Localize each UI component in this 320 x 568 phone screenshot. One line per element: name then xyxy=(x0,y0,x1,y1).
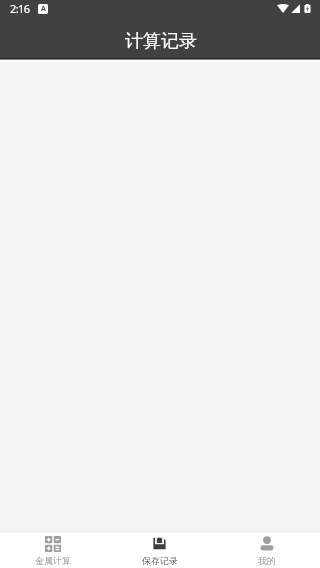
staticText: 计算记录 xyxy=(125,30,197,53)
other: 金属计算 xyxy=(45,536,61,552)
staticText: 我的 xyxy=(258,555,276,566)
staticText: A xyxy=(41,4,46,14)
other: 保存记录 xyxy=(153,537,166,550)
staticText: 金属计算 xyxy=(35,555,71,566)
staticText: 保存记录 xyxy=(142,555,178,566)
button[interactable]: 金属计算 xyxy=(0,533,106,568)
button[interactable]: 保存记录 xyxy=(106,533,213,568)
other: 我的 xyxy=(260,536,274,551)
button[interactable]: 我的 xyxy=(213,533,320,568)
staticText: 2:16 xyxy=(10,1,30,16)
